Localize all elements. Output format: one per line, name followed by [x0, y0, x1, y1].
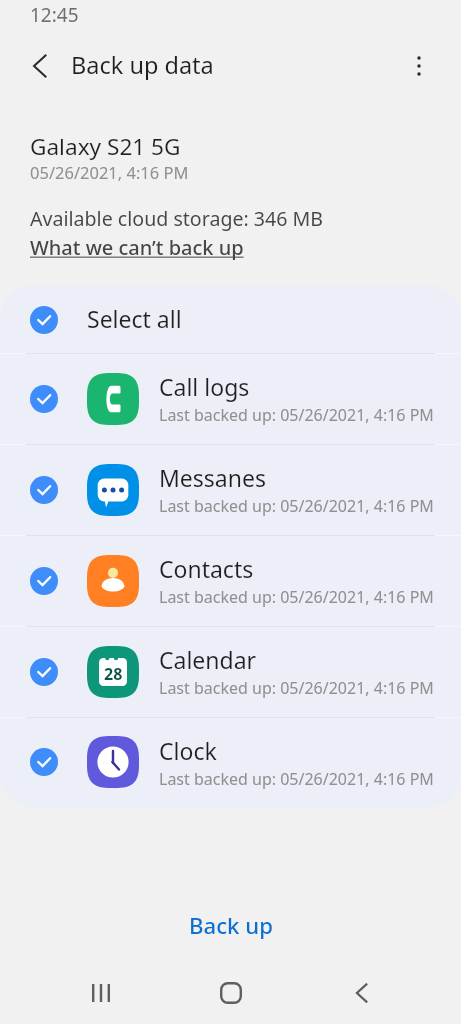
- staticText: Last backed up: 05/26/2021, 4:16 PM: [159, 677, 434, 699]
- staticText: Clock: [159, 735, 217, 766]
- button[interactable]: Back: [324, 955, 400, 1024]
- button[interactable]: Messanes: [0, 444, 461, 535]
- button[interactable]: Clock: [0, 717, 461, 807]
- button[interactable]: Recent apps: [63, 955, 139, 1024]
- button[interactable]: Back: [20, 46, 60, 86]
- staticText: Last backed up: 05/26/2021, 4:16 PM: [159, 768, 434, 790]
- staticText: Messanes: [159, 462, 266, 493]
- staticText: Last backed up: 05/26/2021, 4:16 PM: [159, 404, 434, 426]
- staticText: Galaxy S21 5G: [30, 131, 181, 162]
- staticText: Calendar: [159, 644, 257, 675]
- button[interactable]: Call logs: [0, 353, 461, 444]
- button[interactable]: More options: [399, 46, 439, 86]
- staticText: Back up: [189, 910, 273, 940]
- button[interactable]: Select all: [0, 286, 461, 353]
- staticText: 12:45: [30, 2, 79, 28]
- staticText: 05/26/2021, 4:16 PM: [30, 161, 189, 183]
- button[interactable]: Back up: [0, 898, 461, 952]
- button[interactable]: 28: [0, 626, 461, 717]
- staticText: Contacts: [159, 553, 254, 584]
- button[interactable]: Home: [193, 955, 269, 1024]
- staticText: Last backed up: 05/26/2021, 4:16 PM: [159, 495, 434, 517]
- button[interactable]: What we can’t back up: [30, 234, 244, 261]
- staticText: Last backed up: 05/26/2021, 4:16 PM: [159, 586, 434, 608]
- staticText: Back up data: [71, 49, 214, 81]
- staticText: Select all: [87, 303, 182, 334]
- button[interactable]: Contacts: [0, 535, 461, 626]
- staticText: Call logs: [159, 371, 250, 402]
- staticText: 28: [104, 663, 123, 685]
- staticText: Available cloud storage: 346 MB: [30, 205, 324, 232]
